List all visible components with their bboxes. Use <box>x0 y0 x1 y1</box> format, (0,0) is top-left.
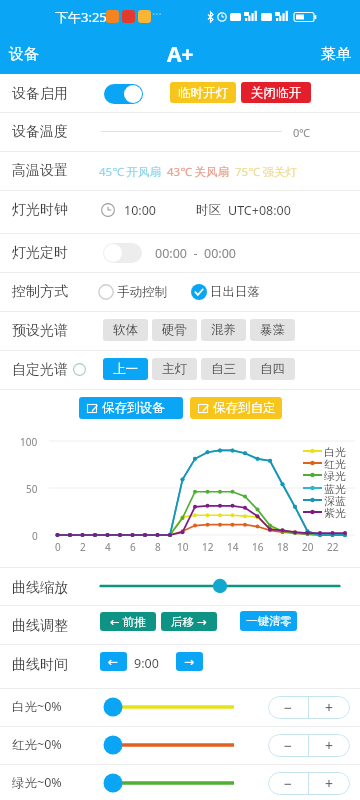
staticText: 曲线调整 <box>12 617 68 635</box>
staticText: 灯光定时 <box>12 244 68 262</box>
button[interactable]: Help <box>73 363 86 376</box>
staticText: 深蓝 <box>324 494 346 508</box>
staticText: ← <box>108 655 119 669</box>
staticText: 软体 <box>113 322 138 338</box>
staticText: 硬骨 <box>162 322 187 338</box>
staticText: 8 <box>155 540 161 554</box>
staticText: 10 <box>177 540 189 554</box>
staticText: 12 <box>202 540 214 554</box>
staticText: 0 <box>55 540 61 554</box>
staticText: 红光~0% <box>12 736 62 753</box>
staticText: 设备 <box>9 45 39 64</box>
button[interactable]: Decrease <box>268 696 308 719</box>
button[interactable]: 曲线时间 <box>0 644 360 688</box>
button[interactable]: 自四 <box>250 358 295 380</box>
button[interactable] <box>100 696 240 718</box>
button[interactable]: 曲线调整 <box>0 605 360 644</box>
staticText: 自三 <box>211 361 236 377</box>
button[interactable]: 设备 <box>0 37 48 72</box>
button[interactable]: A+ <box>159 36 202 73</box>
button[interactable]: 手动控制 <box>98 280 167 303</box>
staticText: 设备启用 <box>12 85 68 103</box>
staticText: − <box>284 774 293 793</box>
button[interactable]: 关闭临开 <box>241 82 311 103</box>
button[interactable]: 设备温度 <box>0 112 360 151</box>
staticText: 0 <box>32 529 38 543</box>
staticText: − <box>284 736 293 755</box>
button[interactable]: 后移 → <box>161 612 217 631</box>
button[interactable]: 硬骨 <box>152 319 197 341</box>
button[interactable]: 上一 <box>103 358 148 380</box>
button[interactable]: 保存到设备 <box>79 397 183 419</box>
button[interactable]: 灯光定时 <box>0 233 360 272</box>
staticText: ··· <box>152 6 162 22</box>
staticText: 曲线时间 <box>12 656 68 674</box>
staticText: 50 <box>26 482 38 496</box>
staticText: 时区 <box>196 202 221 218</box>
staticText: 0℃ <box>293 125 311 140</box>
staticText: 绿光~0% <box>12 774 62 791</box>
button[interactable]: 高温设置 <box>0 151 360 190</box>
button[interactable]: Increase <box>309 734 350 757</box>
button[interactable]: 自三 <box>201 358 246 380</box>
staticText: 45℃ 开风扇 <box>99 164 162 180</box>
staticText: 一键清零 <box>246 614 292 628</box>
staticText: + <box>325 774 334 793</box>
staticText: 14 <box>227 540 239 554</box>
button[interactable]: Increase <box>309 772 350 795</box>
button[interactable]: 软体 <box>103 319 148 341</box>
button[interactable]: 临时开灯 <box>170 82 236 103</box>
button[interactable]: 曲线缩放 <box>0 567 360 605</box>
staticText: − <box>284 698 293 717</box>
button[interactable]: 预设光谱 <box>0 311 360 350</box>
staticText: 上一 <box>113 361 138 377</box>
staticText: 日出日落 <box>210 284 260 300</box>
button[interactable]: 暴藻 <box>250 319 295 341</box>
staticText: 自四 <box>260 361 285 377</box>
button[interactable]: Toggle <box>104 84 143 104</box>
staticText: 白光 <box>324 445 346 459</box>
staticText: 16 <box>252 540 264 554</box>
button[interactable]: Decrease <box>268 734 308 757</box>
staticText: → <box>184 655 195 669</box>
staticText: 后移 → <box>171 614 207 630</box>
button[interactable]: Increase <box>309 696 350 719</box>
staticText: 9:00 <box>134 655 159 672</box>
button[interactable]: Previous <box>100 652 127 671</box>
staticText: 暴藻 <box>260 322 285 338</box>
button[interactable]: 主灯 <box>152 358 197 380</box>
button[interactable] <box>100 772 240 794</box>
staticText: 关闭临开 <box>251 85 301 101</box>
button[interactable]: 保存到自定 <box>190 397 282 419</box>
button[interactable]: 控制方式 <box>0 272 360 311</box>
button[interactable]: 自定光谱 <box>0 350 360 389</box>
staticText: 20 <box>302 540 314 554</box>
staticText: 18 <box>277 540 289 554</box>
staticText: 2 <box>80 540 86 554</box>
staticText: 菜单 <box>321 45 351 64</box>
button[interactable]: 灯光时钟 <box>0 190 360 234</box>
staticText: 临时开灯 <box>178 85 228 101</box>
staticText: A+ <box>167 40 194 69</box>
staticText: 手动控制 <box>117 284 167 300</box>
button[interactable]: 设备启用 <box>0 74 360 112</box>
button[interactable]: 菜单 <box>312 37 360 72</box>
staticText: 00:00 - 00:00 <box>155 245 236 262</box>
button[interactable] <box>98 578 342 594</box>
button[interactable]: Toggle <box>103 243 142 263</box>
button[interactable]: Decrease <box>268 772 308 795</box>
button[interactable]: 日出日落 <box>191 280 260 303</box>
staticText: 75℃ 强关灯 <box>235 164 298 180</box>
staticText: 43℃ 关风扇 <box>167 164 230 180</box>
button[interactable]: 一键清零 <box>240 611 297 631</box>
button[interactable]: 混养 <box>201 319 246 341</box>
staticText: 保存到自定 <box>213 400 276 416</box>
staticText: 主灯 <box>162 361 187 377</box>
staticText: 4 <box>105 540 111 554</box>
staticText: 100 <box>20 435 38 449</box>
staticText: 下午3:25 <box>55 8 107 26</box>
button[interactable]: Next <box>176 652 203 671</box>
button[interactable] <box>100 734 240 756</box>
staticText: 曲线缩放 <box>12 579 68 597</box>
button[interactable]: ← 前推 <box>100 612 156 631</box>
